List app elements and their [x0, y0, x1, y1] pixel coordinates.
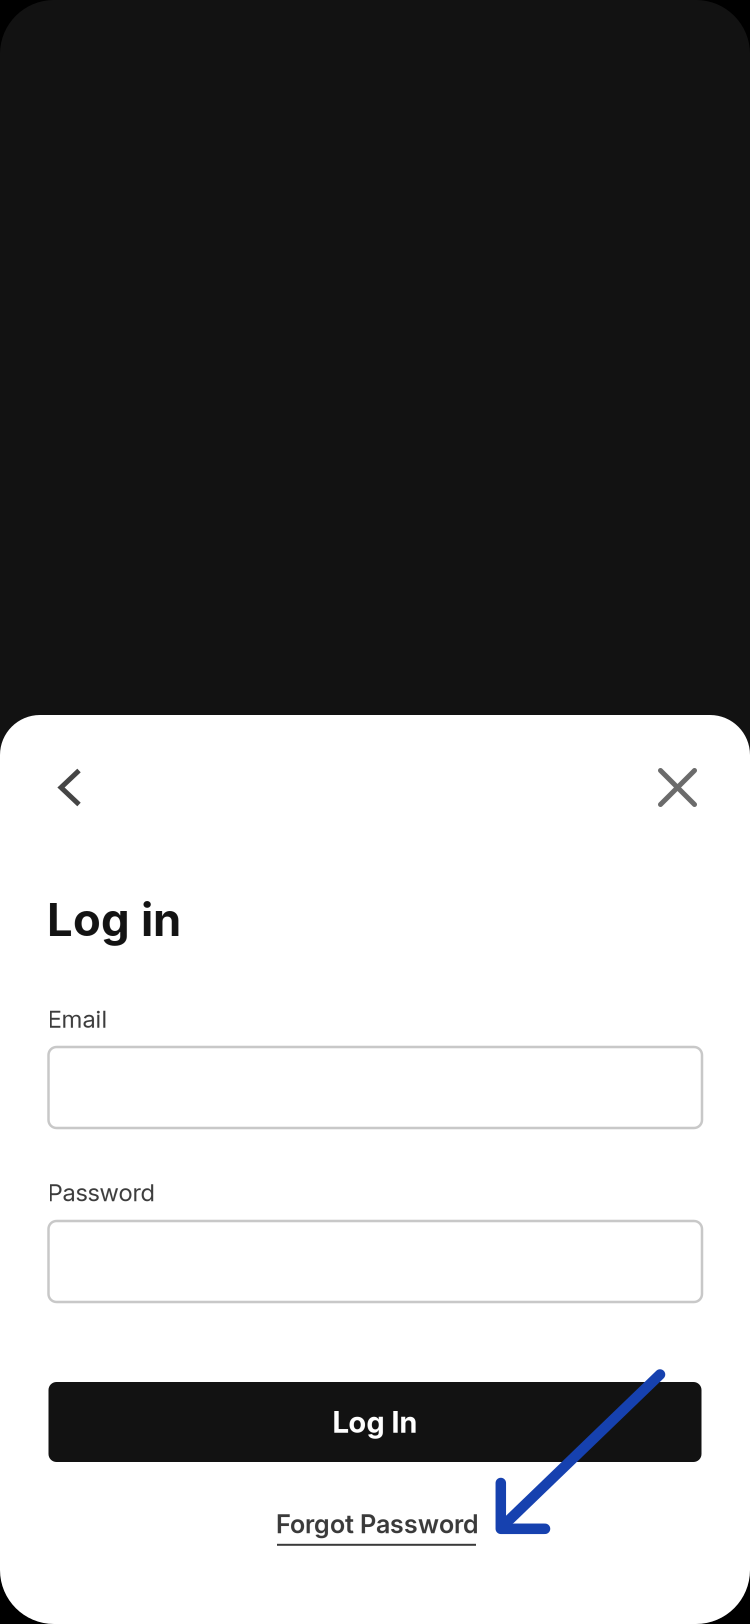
staticText: Log in — [47, 892, 181, 947]
button[interactable]: Forgot Password — [274, 1509, 480, 1559]
button[interactable]: Back — [28, 745, 112, 829]
staticText: Forgot Password — [276, 1509, 479, 1539]
staticText: Log In — [332, 1404, 417, 1440]
staticText: Password — [47, 1178, 154, 1207]
button[interactable]: Log In — [48, 1382, 701, 1462]
staticText: Email — [47, 1004, 107, 1033]
button[interactable]: Close — [635, 745, 719, 829]
